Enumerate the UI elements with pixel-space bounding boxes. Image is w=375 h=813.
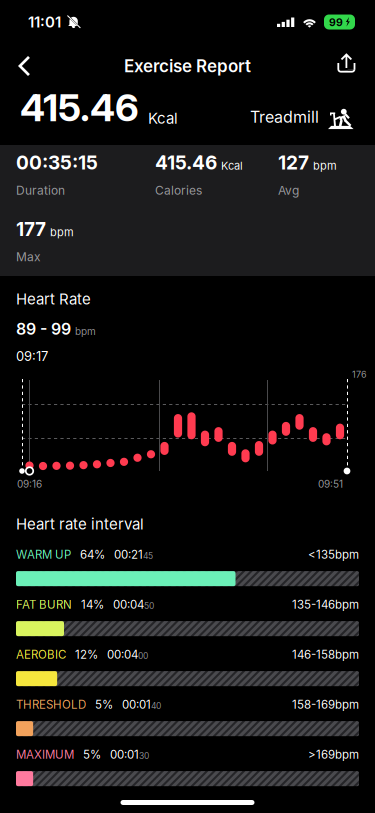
staticText: THRESHOLD <box>16 698 86 712</box>
staticText: 135-146bpm <box>292 598 359 612</box>
staticText: bpm <box>75 325 96 337</box>
staticText: 00:21 <box>114 548 143 562</box>
staticText: 00:35:15 <box>16 151 98 174</box>
staticText: 5% <box>83 748 101 762</box>
staticText: WARM UP <box>16 548 71 562</box>
staticText: AEROBIC <box>16 648 66 662</box>
staticText: Kcal <box>148 109 178 127</box>
staticText: bpm <box>50 226 74 239</box>
staticText: Heart Rate <box>16 290 91 308</box>
staticText: Calories <box>155 183 202 197</box>
staticText: Treadmill <box>250 107 319 126</box>
staticText: 12% <box>75 648 98 662</box>
staticText: 11:01 <box>28 13 61 31</box>
button[interactable]: Back <box>9 44 39 88</box>
staticText: 09:17 <box>16 348 48 364</box>
staticText: 127 <box>278 151 309 174</box>
staticText: 5% <box>95 698 113 712</box>
staticText: 146-158bpm <box>292 648 359 662</box>
staticText: Avg <box>278 183 299 197</box>
staticText: 177 <box>16 217 46 240</box>
staticText: 89 - 99 <box>16 319 71 338</box>
staticText: Heart rate interval <box>16 515 144 533</box>
staticText: >169bpm <box>308 748 359 762</box>
button[interactable]: Share <box>329 44 366 88</box>
staticText: Max <box>16 249 41 264</box>
staticText: 158-169bpm <box>292 698 359 712</box>
staticText: bpm <box>313 159 337 172</box>
staticText: 00:01 <box>110 748 139 762</box>
staticText: 50 <box>144 601 154 611</box>
staticText: 415.46 <box>155 151 217 174</box>
staticText: 00:04 <box>113 598 144 612</box>
staticText: Kcal <box>221 159 243 172</box>
staticText: Duration <box>16 183 65 197</box>
staticText: 09:16 <box>17 478 42 490</box>
staticText: 30 <box>139 751 149 761</box>
staticText: <135bpm <box>308 548 359 562</box>
staticText: 09:51 <box>318 478 343 490</box>
staticText: 45 <box>143 551 153 561</box>
staticText: 40 <box>151 701 161 711</box>
staticText: 64% <box>80 548 105 562</box>
staticText: Exercise Report <box>124 56 251 76</box>
staticText: FAT BURN <box>16 598 72 612</box>
staticText: 415.46 <box>20 84 139 130</box>
staticText: 00:01 <box>122 698 151 712</box>
staticText: 00:04 <box>107 648 138 662</box>
staticText: 176 <box>352 369 367 380</box>
staticText: 99 <box>329 16 343 29</box>
staticText: 14% <box>81 598 104 612</box>
staticText: 00 <box>138 651 148 661</box>
staticText: MAXIMUM <box>16 748 74 762</box>
